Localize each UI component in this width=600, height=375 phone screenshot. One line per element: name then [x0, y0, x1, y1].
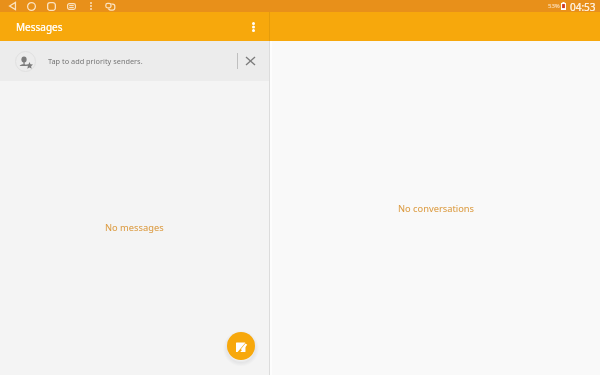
button[interactable]: More: [82, 0, 100, 12]
button[interactable]: Recent apps: [42, 0, 60, 12]
staticText: Tap to add priority senders.: [48, 56, 143, 66]
button[interactable]: Multi window: [101, 0, 119, 12]
staticText: 04:53: [570, 0, 596, 12]
button[interactable]: Home: [22, 0, 40, 12]
staticText: No conversations: [398, 202, 474, 215]
staticText: 53%: [548, 2, 560, 10]
button[interactable]: Dismiss: [237, 41, 264, 81]
button[interactable]: Back: [3, 0, 21, 12]
button[interactable]: More options: [243, 12, 263, 41]
staticText: No messages: [105, 221, 164, 234]
button[interactable]: Keyboard: [62, 0, 80, 12]
staticText: Messages: [16, 20, 63, 34]
button[interactable]: Tap to add priority senders.: [0, 41, 269, 81]
button[interactable]: New message: [227, 332, 255, 360]
